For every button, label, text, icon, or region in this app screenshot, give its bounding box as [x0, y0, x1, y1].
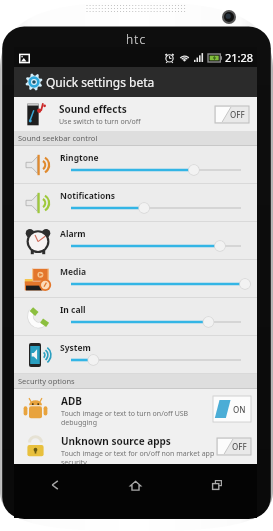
button[interactable]: Unknown source apps	[14, 429, 257, 464]
staticText: Touch image or text for on/off non marke…	[61, 449, 215, 467]
staticText: System	[60, 342, 91, 354]
staticText: ON	[233, 404, 246, 415]
staticText: 21:28	[225, 50, 254, 65]
staticText: Quick settings beta	[46, 74, 155, 90]
staticText: ADB	[61, 394, 82, 408]
button[interactable]: Sound effects	[14, 97, 257, 131]
staticText: Security options	[18, 376, 75, 386]
button[interactable]: Media	[14, 260, 257, 298]
button[interactable]: Back	[14, 464, 95, 506]
button[interactable]: In call	[14, 298, 257, 336]
staticText: Alarm	[60, 228, 86, 240]
button[interactable]: Recent apps	[176, 464, 257, 506]
button[interactable]: System	[14, 336, 257, 374]
button[interactable]: Switch off	[217, 438, 251, 455]
staticText: Sound effects	[59, 102, 127, 116]
staticText: Sound seekbar control	[18, 133, 98, 143]
button[interactable]: Alarm	[14, 222, 257, 260]
button[interactable]: Quick settings beta	[14, 67, 257, 97]
staticText: Notifications	[60, 190, 116, 202]
staticText: htc	[126, 31, 147, 47]
staticText: OFF	[230, 109, 245, 120]
staticText: Ringtone	[60, 152, 99, 164]
staticText: Media	[60, 266, 87, 278]
staticText: Use switch to turn on/off	[59, 117, 141, 127]
staticText: Touch image or text to turn on/off USB d…	[61, 409, 189, 427]
staticText: In call	[60, 304, 86, 316]
button[interactable]: Switch on	[213, 396, 251, 422]
staticText: Unknown source apps	[61, 434, 171, 448]
button[interactable]: Notifications	[14, 184, 257, 222]
button[interactable]: Switch off	[215, 106, 249, 123]
button[interactable]: Home	[95, 464, 176, 506]
button[interactable]: ADB	[14, 389, 257, 429]
staticText: OFF	[232, 441, 247, 452]
button[interactable]: Ringtone	[14, 146, 257, 184]
